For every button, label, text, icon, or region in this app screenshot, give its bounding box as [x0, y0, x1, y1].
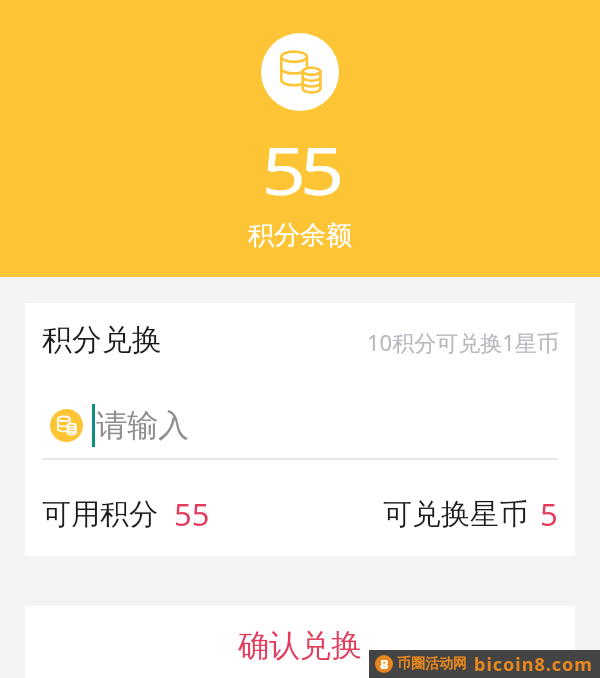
other: 积分	[50, 409, 83, 442]
staticText: Ƀ	[380, 655, 389, 673]
button[interactable]: 确认兑换	[25, 606, 575, 678]
staticText: 积分余额	[248, 219, 352, 252]
staticText: 确认兑换	[238, 626, 362, 665]
staticText: 积分兑换	[42, 321, 162, 359]
staticText: 请输入	[96, 406, 189, 445]
staticText: 可兑换星币	[383, 496, 528, 533]
other: 积分余额图标	[261, 33, 339, 111]
staticText: 55	[261, 124, 339, 214]
staticText: 可用积分	[42, 496, 158, 533]
staticText: bicoin8.com	[474, 652, 593, 677]
staticText: 5	[540, 493, 558, 535]
staticText: 币圈活动网	[397, 655, 467, 673]
staticText: 55	[174, 493, 210, 535]
button[interactable]: 积分输入框，请输入	[25, 404, 575, 447]
staticText: 10积分可兑换1星币	[367, 327, 559, 357]
